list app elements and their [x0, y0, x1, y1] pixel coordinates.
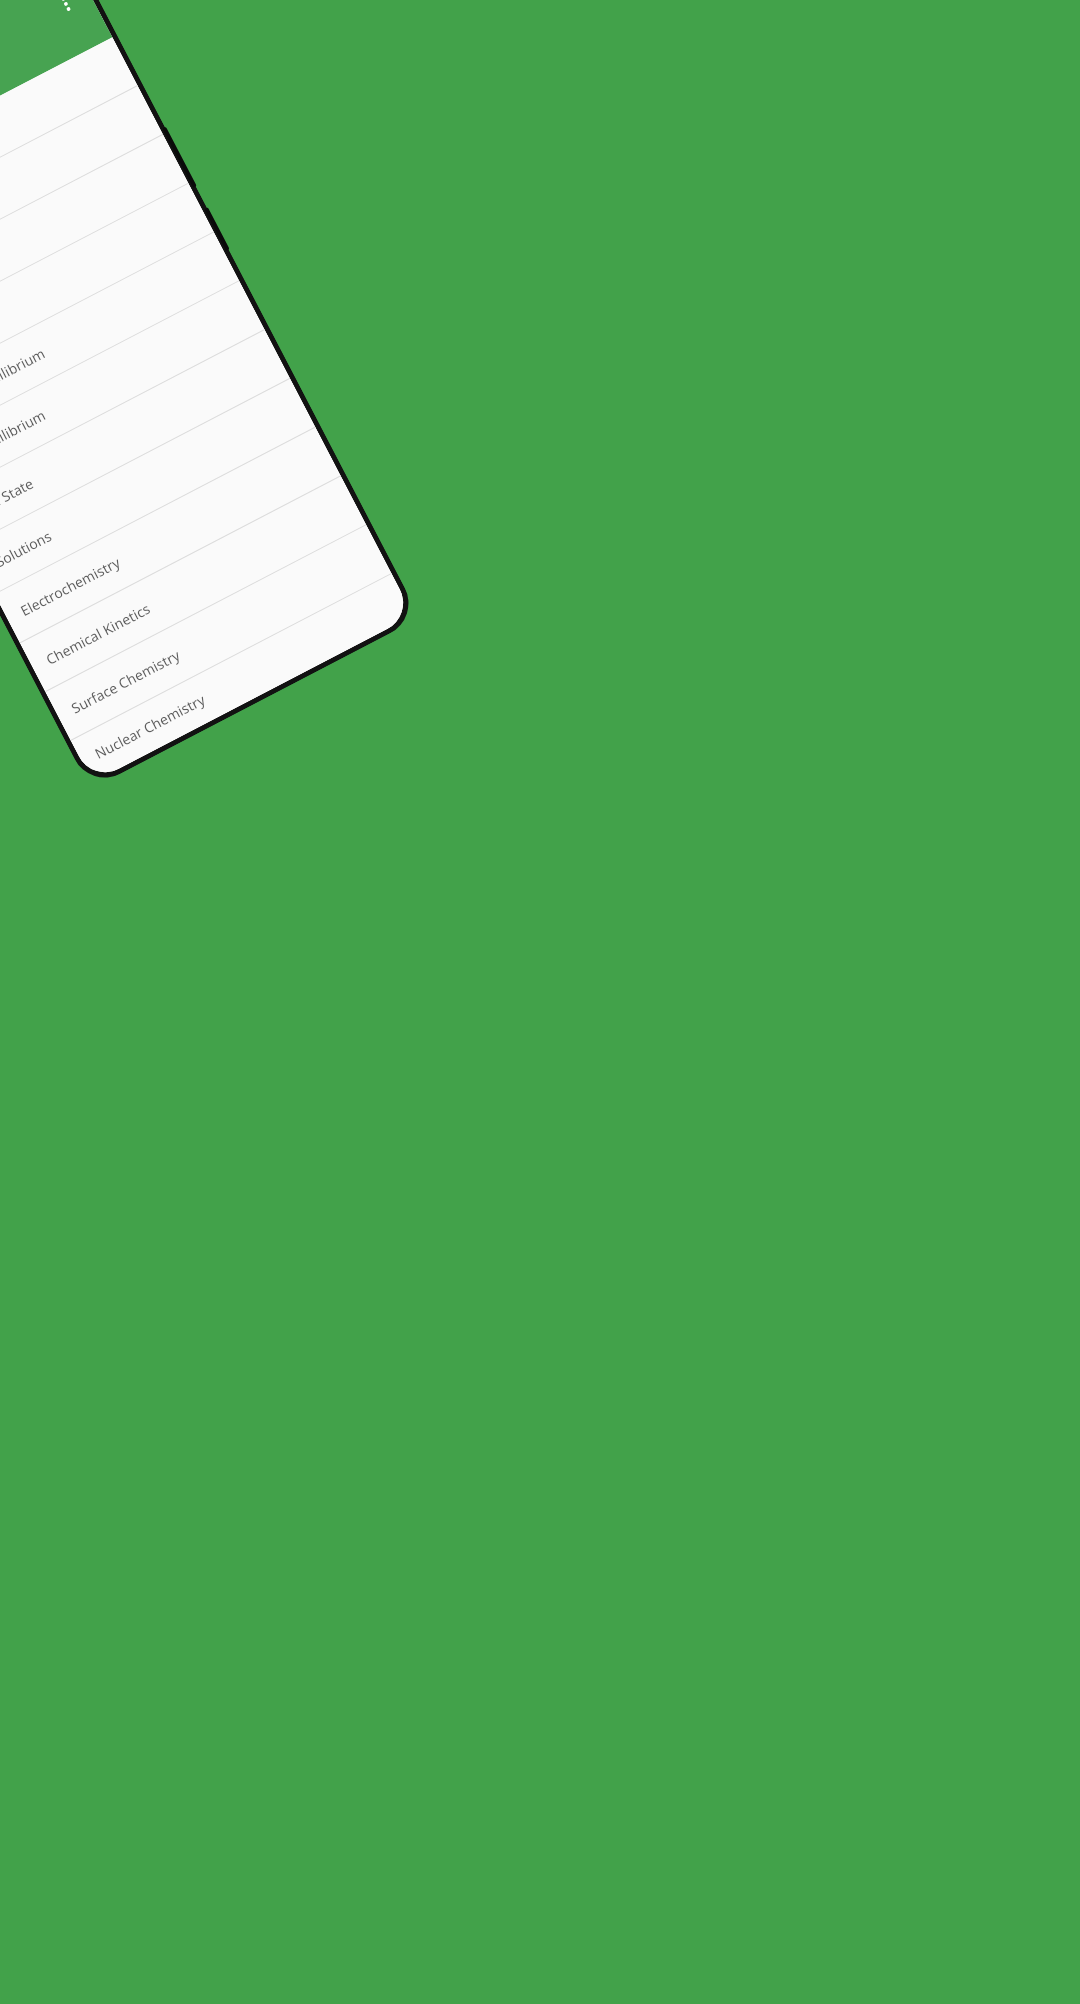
staticText: Thermodynamics	[0, 306, 1, 376]
button[interactable]: Nuclear Chemistry	[71, 574, 414, 783]
staticText: Solutions	[0, 526, 55, 571]
button[interactable]: More options	[36, 0, 95, 34]
button[interactable]: Chemical Equilibrium	[0, 232, 239, 447]
button[interactable]: Thermodynamics	[0, 183, 214, 399]
button[interactable]: Stoichiometry	[0, 37, 137, 252]
staticText: Ionic Equilibrium	[0, 405, 49, 474]
staticText: Solid State	[0, 473, 37, 522]
button[interactable]: Ionic Equilibrium	[0, 281, 264, 496]
button[interactable]: Chemical Kinetics	[20, 476, 366, 691]
staticText: Chemical Kinetics	[42, 599, 153, 669]
button[interactable]: Gaseous State	[0, 135, 188, 350]
staticText: Chemical Equilibrium	[0, 343, 48, 425]
staticText: Electrochemistry	[17, 552, 123, 620]
button[interactable]: Electrochemistry	[0, 427, 341, 643]
staticText: Nuclear Chemistry	[91, 690, 208, 763]
button[interactable]: Atomic Structure	[0, 86, 163, 301]
staticText: Surface Chemistry	[68, 645, 183, 718]
button[interactable]: Surface Chemistry	[45, 525, 391, 740]
button[interactable]: Solutions	[0, 379, 315, 594]
button[interactable]: Solid State	[0, 330, 290, 545]
